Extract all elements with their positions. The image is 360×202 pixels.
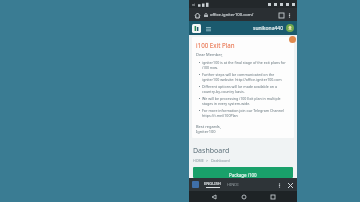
button[interactable]: i100 Exit Plan <box>192 37 294 138</box>
staticText: ENGLISH <box>204 181 221 186</box>
staticText: Further steps will be communicated on th… <box>202 72 290 82</box>
staticText: Dear Member, <box>196 52 223 57</box>
staticText: Igniter100 <box>196 129 216 134</box>
button[interactable]: Menu <box>205 25 212 32</box>
button[interactable]: office.igniter100.com/ <box>204 12 277 18</box>
staticText: Dashboard <box>211 158 230 163</box>
staticText: vi <box>192 2 196 7</box>
button[interactable]: Logo <box>192 24 201 33</box>
button[interactable]: Tabs <box>277 11 285 19</box>
staticText: Package i100 <box>229 172 257 178</box>
button[interactable]: More options <box>285 11 293 19</box>
button[interactable]: Home <box>238 191 249 202</box>
button[interactable]: sunikona440 <box>253 24 294 32</box>
staticText: HINDI <box>227 182 239 187</box>
staticText: HOME <box>193 158 204 163</box>
button[interactable]: Close <box>286 181 294 189</box>
staticText: Different options will be made available… <box>202 84 290 94</box>
button[interactable]: Keyboard <box>192 181 199 188</box>
staticText: sunikona440 <box>253 25 284 32</box>
staticText: i100 Exit Plan <box>196 41 235 49</box>
button[interactable]: More options <box>275 181 283 189</box>
staticText: Best regards, <box>196 124 221 129</box>
button[interactable]: Recents <box>267 191 278 202</box>
staticText: > <box>206 158 209 163</box>
button[interactable]: Home <box>193 11 201 19</box>
staticText: We will be processing i100 Exit plan in … <box>202 96 290 106</box>
button[interactable]: Back <box>208 191 219 202</box>
button[interactable]: ENGLISH <box>204 181 221 188</box>
button[interactable]: Package i100 <box>193 167 293 178</box>
button[interactable]: HINDI <box>227 182 239 187</box>
staticText: For more information join our Telegram C… <box>202 108 290 118</box>
staticText: igniter100 is at the final stage of the … <box>202 60 290 70</box>
staticText: Dashboard <box>193 146 230 156</box>
staticText: office.igniter100.com/ <box>210 12 254 18</box>
